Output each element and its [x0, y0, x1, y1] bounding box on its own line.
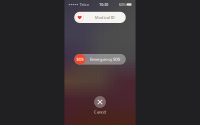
- button[interactable]: SOS: [74, 54, 126, 65]
- button[interactable]: Medical ID: [74, 12, 126, 23]
- button[interactable]: Cancel: [94, 96, 106, 115]
- staticText: 84%: [118, 2, 125, 7]
- staticText: •••••: [68, 2, 78, 7]
- staticText: Emergency SOS: [90, 57, 120, 62]
- staticText: 10:30: [99, 2, 108, 7]
- staticText: SOS: [76, 57, 83, 62]
- staticText: Telco: [79, 2, 88, 7]
- staticText: Medical ID: [95, 15, 115, 20]
- staticText: Cancel: [94, 109, 106, 115]
